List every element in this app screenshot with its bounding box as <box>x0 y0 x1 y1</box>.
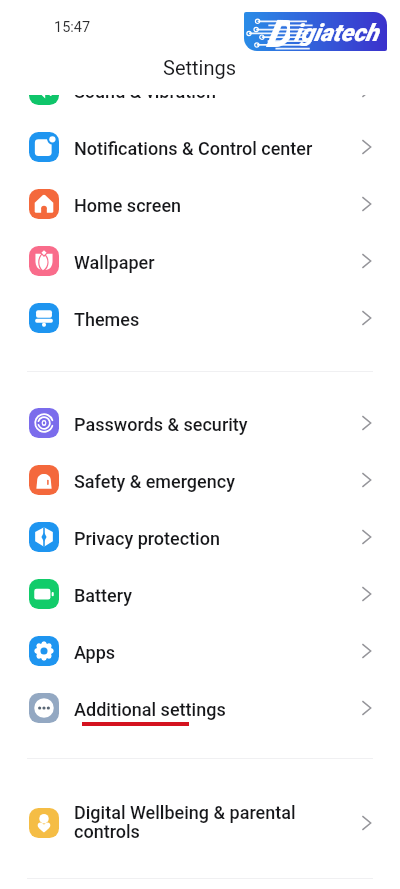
button[interactable]: Safety & emergency <box>0 452 400 508</box>
staticText: controls <box>74 821 140 842</box>
button[interactable]: Additional settings <box>0 680 400 736</box>
other: Digiatech watermark <box>244 12 387 51</box>
staticText: Themes <box>74 309 140 330</box>
staticText: igiatech <box>294 19 379 47</box>
staticText: Digital Wellbeing & parental <box>74 802 296 823</box>
button[interactable]: Apps <box>0 623 400 679</box>
button[interactable]: Home screen <box>0 176 400 232</box>
staticText: Wallpaper <box>74 252 155 273</box>
button[interactable]: Privacy protection <box>0 509 400 565</box>
button[interactable]: Passwords & security <box>0 395 400 451</box>
button[interactable]: Notifications & Control center <box>0 119 400 175</box>
staticText: Notifications & Control center <box>74 138 313 159</box>
staticText: Sound & vibration <box>74 95 217 102</box>
staticText: Passwords & security <box>74 414 248 435</box>
staticText: Safety & emergency <box>74 471 235 492</box>
staticText: 15:47 <box>54 19 91 36</box>
staticText: Settings <box>163 56 237 79</box>
staticText: D <box>266 12 290 51</box>
staticText: Privacy protection <box>74 528 220 549</box>
button[interactable]: Digital Wellbeing & parental <box>0 795 400 851</box>
button[interactable]: Wallpaper <box>0 233 400 289</box>
button[interactable]: Themes <box>0 290 400 346</box>
staticText: Home screen <box>74 195 182 216</box>
button[interactable]: Sound & vibration <box>0 95 400 118</box>
staticText: Apps <box>74 642 116 663</box>
staticText: Additional settings <box>74 699 226 720</box>
staticText: Battery <box>74 585 133 606</box>
button[interactable]: Battery <box>0 566 400 622</box>
